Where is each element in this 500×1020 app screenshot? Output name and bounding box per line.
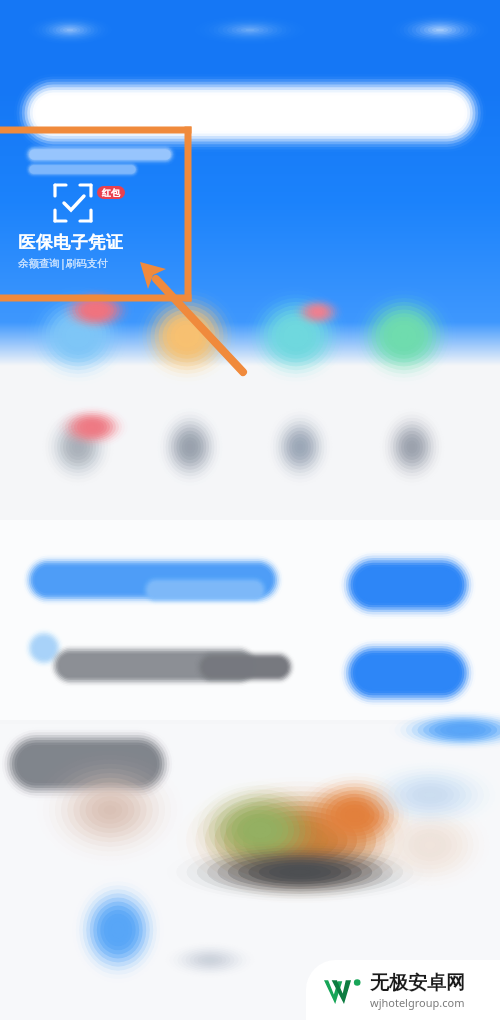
staticText: 无极安卓网 [370, 971, 465, 995]
button[interactable]: 医保电子凭证 余额查询 刷码支付 [0, 178, 160, 282]
staticText: wjhotelgroup.com [370, 995, 465, 1010]
staticText: 医保电子凭证 [18, 232, 123, 253]
staticText: 红包 [102, 187, 120, 198]
staticText: 余额查询|刷码支付 [18, 256, 108, 270]
